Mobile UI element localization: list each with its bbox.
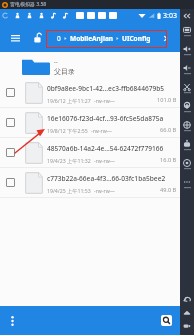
- button[interactable]: More options: [3, 312, 21, 330]
- staticText: -rw-rw—: [94, 187, 115, 194]
- staticText: 19/8/12 下午2:55: [47, 127, 88, 134]
- staticText: -rw-rw—: [94, 97, 115, 104]
- button[interactable]: 0: [52, 29, 158, 47]
- button[interactable]: Cut: [180, 79, 194, 98]
- button[interactable]: Location: [180, 98, 194, 117]
- button[interactable]: Collapse toolbar: [180, 9, 194, 22]
- button[interactable]: Home: [180, 306, 194, 319]
- staticText: 父目录: [54, 67, 75, 76]
- staticText: 48570a6b-14a2-4e...54-62472f779166: [47, 144, 164, 153]
- staticText: 雷电模拟器 3.58: [10, 1, 47, 8]
- button[interactable]: Select: [6, 88, 15, 97]
- button[interactable]: Back: [180, 293, 194, 306]
- button[interactable]: Volume down: [180, 60, 194, 79]
- button[interactable]: More: [180, 174, 194, 193]
- button[interactable]: Search: [161, 315, 172, 326]
- button[interactable]: Forward: [158, 31, 172, 45]
- staticText: ..: [54, 56, 58, 66]
- button[interactable]: Gamepad: [180, 117, 194, 136]
- staticText: 19/6/12 上午11:27: [47, 97, 91, 104]
- staticText: -rw-rw—: [91, 127, 112, 134]
- staticText: MobileAnJian: [70, 34, 113, 43]
- staticText: 16.0 B: [160, 156, 177, 164]
- button[interactable]: Recents: [180, 319, 194, 332]
- button[interactable]: Screenshot: [180, 22, 194, 41]
- staticText: UIConfig: [122, 34, 151, 43]
- staticText: 66.0 B: [160, 126, 177, 134]
- button[interactable]: Select: [6, 178, 15, 187]
- staticText: 19/4/25 上午11:53: [47, 187, 91, 194]
- button[interactable]: Select: [0, 138, 180, 167]
- button[interactable]: Select: [0, 168, 180, 197]
- button[interactable]: Select: [6, 148, 15, 157]
- staticText: 19/4/23 上午11:32: [47, 157, 91, 164]
- button[interactable]: Select: [6, 118, 15, 127]
- button[interactable]: Select: [0, 108, 180, 137]
- button[interactable]: Lock: [31, 31, 45, 45]
- staticText: 101.0 B: [157, 96, 177, 104]
- button[interactable]: Settings: [180, 155, 194, 174]
- button[interactable]: Navigation menu: [8, 31, 22, 45]
- staticText: 16e16076-f23d-4cf...93-6fc5e5da875a: [47, 114, 164, 123]
- button[interactable]: Select: [0, 78, 180, 107]
- staticText: 3:03: [163, 11, 177, 21]
- button[interactable]: ..: [0, 52, 180, 78]
- button[interactable]: Volume up: [180, 41, 194, 60]
- staticText: 0bf9a8ee-9bc1-42...ec3-ffb6844679b5: [47, 84, 165, 93]
- button[interactable]: Automation: [180, 136, 194, 155]
- staticText: 0: [57, 34, 61, 43]
- staticText: -rw-rw—: [94, 157, 115, 164]
- staticText: 49.0 B: [160, 186, 177, 194]
- staticText: c773b22a-66ea-4f3...66-03fc1ba5bee2: [47, 174, 166, 183]
